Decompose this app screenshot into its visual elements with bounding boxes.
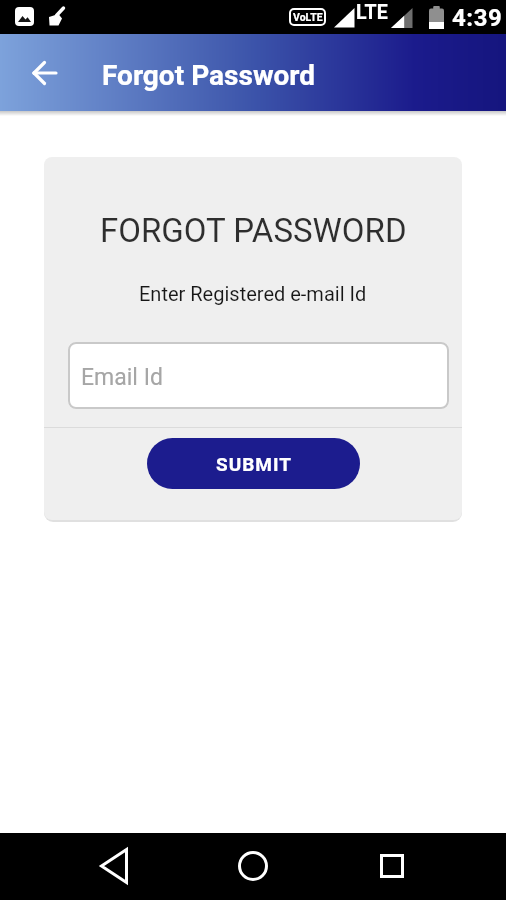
button[interactable] <box>96 845 132 887</box>
button[interactable] <box>33 61 57 85</box>
button[interactable] <box>235 845 271 887</box>
staticText: SUBMIT <box>216 453 292 475</box>
staticText: Forgot Password <box>102 59 316 92</box>
staticText: Enter Registered e-mail Id <box>139 282 367 305</box>
button[interactable]: SUBMIT <box>147 438 360 489</box>
staticText: VoLTE <box>293 11 323 23</box>
button[interactable]: Email Id <box>68 342 449 409</box>
button[interactable] <box>374 845 410 887</box>
staticText: Email Id <box>81 364 163 391</box>
staticText: FORGOT PASSWORD <box>100 211 407 250</box>
staticText: 4:39 <box>452 4 503 32</box>
staticText: LTE <box>356 1 388 24</box>
